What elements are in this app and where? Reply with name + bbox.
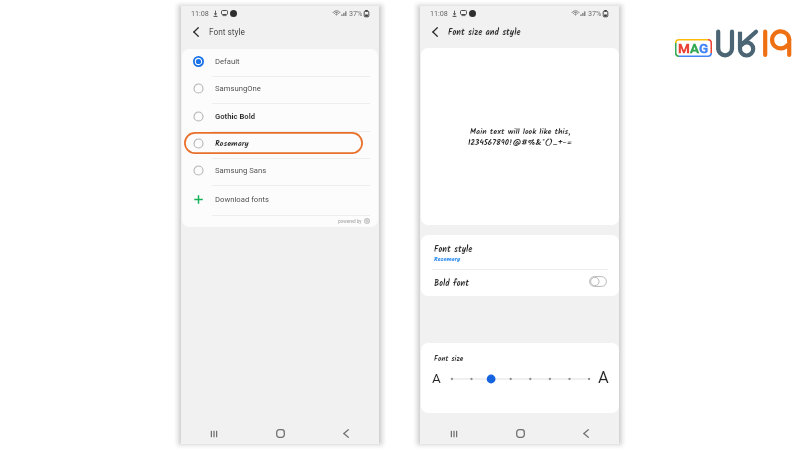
staticText: Download fonts — [215, 195, 269, 204]
button[interactable]: Back — [425, 23, 445, 41]
staticText: A — [432, 370, 441, 386]
staticText: Samsung Sans — [215, 166, 267, 175]
staticText: Main text will look like this, — [470, 125, 571, 138]
staticText: G — [699, 40, 709, 56]
button[interactable]: Rosemary — [182, 132, 378, 154]
staticText: 37% — [349, 9, 363, 17]
staticText: Font size and style — [448, 26, 521, 39]
button[interactable]: Font style — [421, 235, 619, 269]
staticText: Font style — [209, 27, 245, 37]
button[interactable]: Samsung Sans — [182, 159, 378, 181]
button[interactable]: Back — [553, 425, 619, 442]
staticText: Font size — [434, 353, 464, 364]
button[interactable]: Recents — [420, 425, 487, 442]
button[interactable]: Back — [313, 425, 379, 442]
staticText: A — [598, 368, 609, 387]
staticText: Rosemary — [434, 254, 461, 264]
staticText: SamsungOne — [215, 84, 261, 93]
button[interactable]: Default — [182, 50, 378, 72]
staticText: powered by — [338, 219, 362, 224]
staticText: Bold font — [434, 277, 469, 290]
button[interactable]: Gothic Bold — [182, 105, 378, 127]
staticText: 11:08 — [430, 9, 448, 17]
button[interactable]: SamsungOne — [182, 77, 378, 99]
staticText: 37% — [588, 9, 602, 17]
button[interactable]: Home — [487, 425, 553, 442]
staticText: A — [690, 40, 699, 56]
button[interactable]: Home — [247, 425, 313, 442]
staticText: M — [678, 40, 690, 56]
staticText: Default — [215, 57, 240, 66]
button[interactable]: Font size slider — [448, 372, 593, 386]
staticText: 11:08 — [191, 9, 209, 17]
button[interactable]: Bold font — [421, 270, 619, 296]
staticText: 1234567890!@#%&*()_+-= — [468, 136, 573, 149]
button[interactable]: Back — [186, 23, 206, 41]
staticText: Gothic Bold — [215, 112, 256, 121]
button[interactable]: Bold font toggle — [589, 276, 607, 287]
button[interactable]: Recents — [181, 425, 247, 442]
staticText: Font style — [434, 243, 473, 256]
button[interactable]: Download fonts — [182, 188, 378, 210]
staticText: Rosemary — [215, 137, 249, 150]
